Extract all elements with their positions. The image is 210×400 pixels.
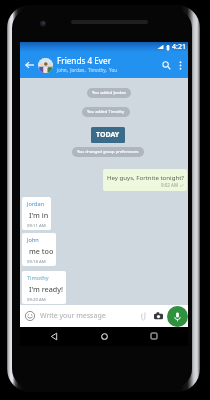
button[interactable]: Search: [159, 55, 174, 75]
button[interactable]: Camera: [152, 308, 164, 324]
staticText: You changed group preferences: [77, 149, 139, 155]
staticText: 09:18 AM: [27, 258, 46, 264]
staticText: Hey guys, Fortnite tonight?: [107, 173, 184, 181]
staticText: TODAY: [96, 130, 120, 140]
staticText: John, Jordan, Timothy, You: [57, 67, 118, 73]
staticText: 4:21: [172, 42, 186, 52]
staticText: You added Jordan: [92, 90, 126, 96]
button[interactable]: Emoji: [23, 309, 37, 323]
staticText: Jordan: [27, 200, 45, 208]
button[interactable]: Home: [96, 328, 112, 344]
staticText: Timothy: [27, 274, 49, 282]
button[interactable]: Back: [46, 328, 62, 344]
button[interactable]: Voice message: [167, 306, 188, 327]
staticText: 9:02 AM: [161, 182, 179, 188]
button[interactable]: Recents: [146, 328, 162, 344]
staticText: Friends 4 Ever: [57, 55, 112, 66]
staticText: I'm in: [29, 210, 49, 220]
button[interactable]: Attach: [138, 308, 149, 324]
staticText: me too: [29, 246, 54, 256]
button[interactable]: More options: [174, 55, 186, 75]
staticText: You added Timothy: [87, 109, 125, 115]
button[interactable]: Back: [22, 55, 36, 75]
staticText: 09:11 AM: [27, 222, 46, 228]
staticText: John: [27, 236, 39, 244]
staticText: Write your message: [40, 311, 106, 321]
staticText: I'm ready!: [29, 284, 64, 294]
staticText: 09:20 AM: [27, 296, 46, 302]
